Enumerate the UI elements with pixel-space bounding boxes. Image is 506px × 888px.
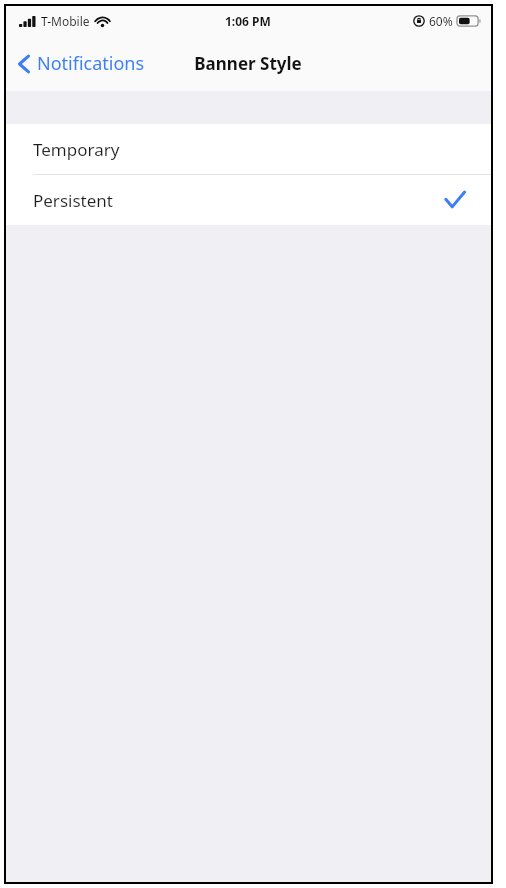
button[interactable]: Temporary bbox=[6, 124, 491, 174]
staticText: 60% bbox=[429, 13, 453, 29]
staticText: Notifications bbox=[37, 51, 145, 76]
staticText: Persistent bbox=[33, 189, 113, 212]
button[interactable]: Persistent bbox=[6, 175, 491, 225]
staticText: T-Mobile bbox=[41, 13, 90, 29]
staticText: 1:06 PM bbox=[225, 13, 271, 29]
staticText: Banner Style bbox=[194, 52, 302, 75]
staticText: Temporary bbox=[33, 138, 120, 161]
button[interactable]: Notifications bbox=[6, 36, 153, 91]
other: Selected bbox=[445, 191, 465, 209]
